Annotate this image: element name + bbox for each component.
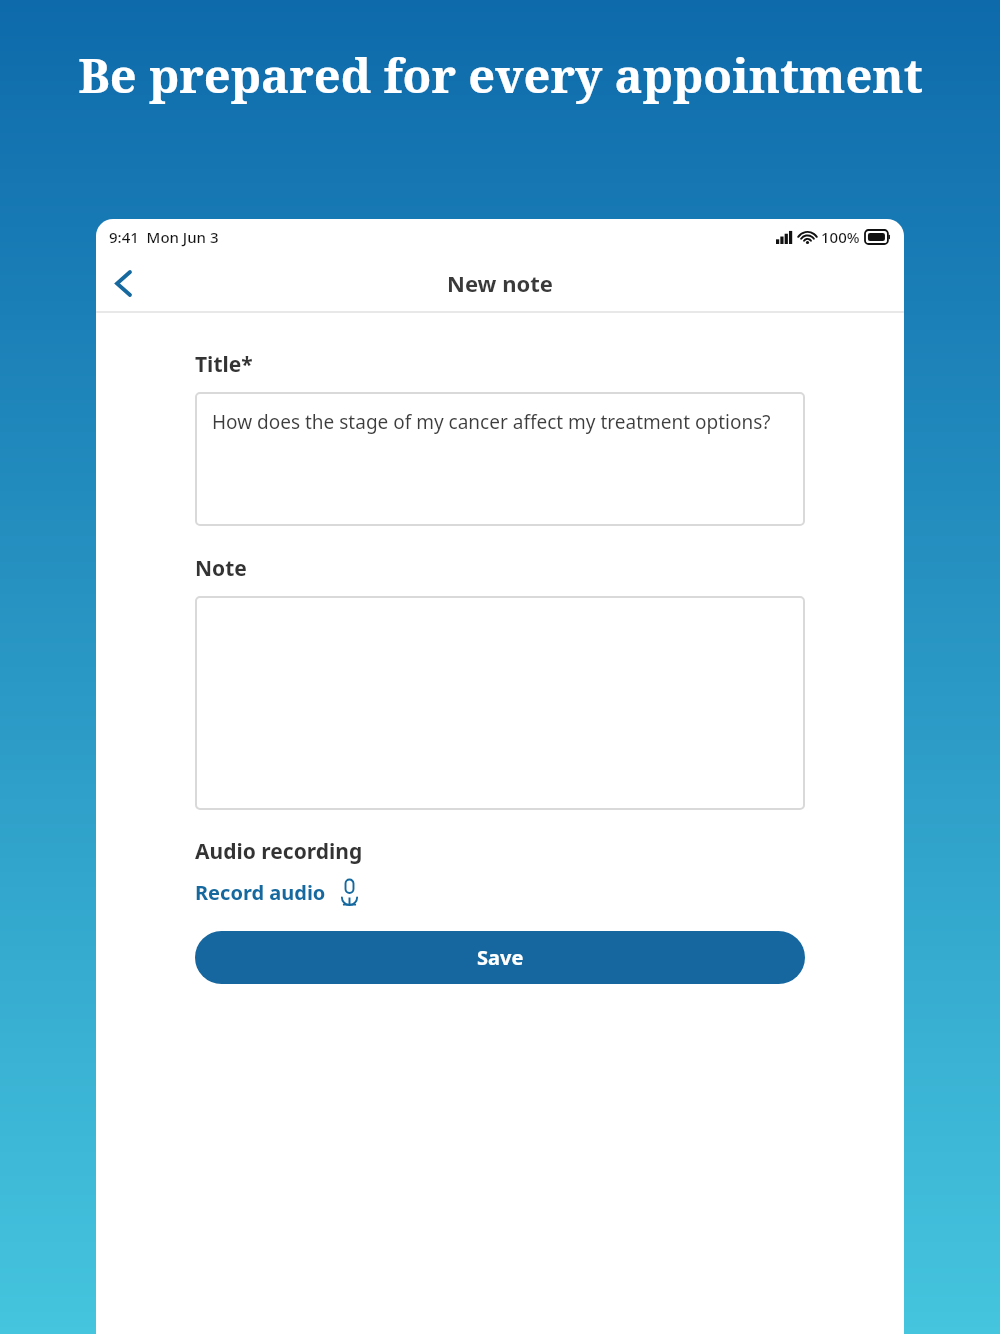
staticText: How does the stage of my cancer affect m…	[212, 409, 771, 435]
staticText: New note	[447, 268, 553, 298]
staticText: Note	[195, 554, 247, 583]
staticText: Save	[477, 944, 524, 971]
button[interactable]	[195, 596, 805, 810]
staticText: Audio recording	[195, 837, 363, 866]
staticText: Record audio	[195, 879, 326, 906]
button[interactable]: Back	[96, 256, 150, 310]
staticText: 9:41 Mon Jun 3	[109, 227, 219, 247]
button[interactable]: Record audio	[195, 875, 359, 910]
button[interactable]: Save	[195, 931, 805, 984]
staticText: Title*	[195, 350, 253, 379]
other: Microphone	[340, 879, 359, 906]
button[interactable]: How does the stage of my cancer affect m…	[195, 392, 805, 526]
staticText: 100%	[821, 227, 860, 247]
staticText: Be prepared for every appointment	[78, 43, 923, 107]
